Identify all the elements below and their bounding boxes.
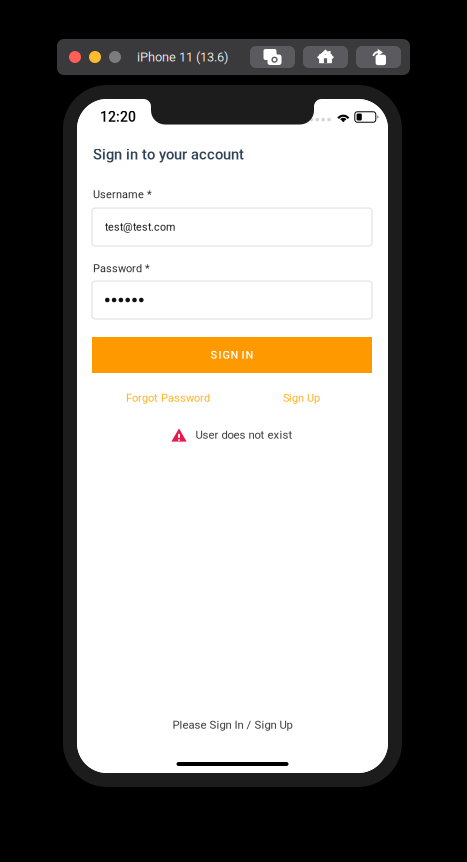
button[interactable]: Minimise	[89, 51, 101, 63]
button[interactable]: Sign Up	[283, 392, 320, 404]
staticText: Password *	[93, 262, 150, 275]
staticText: Please Sign In / Sign Up	[172, 718, 292, 732]
button[interactable]: Close	[69, 51, 81, 63]
button[interactable]: Rotate	[356, 46, 401, 68]
staticText: Sign Up	[283, 392, 320, 404]
staticText: 12:20	[100, 109, 136, 125]
staticText: User does not exist	[196, 428, 293, 442]
button[interactable]: Forgot Password	[126, 392, 210, 404]
button[interactable]: Home	[303, 46, 348, 68]
button[interactable]: S I G N I N	[92, 337, 372, 373]
staticText: S I G N I N	[210, 349, 253, 361]
staticText: Sign in to your account	[93, 146, 244, 163]
staticText: Username *	[93, 188, 152, 201]
button[interactable]: Screenshot	[250, 46, 295, 68]
staticText: iPhone 11 (13.6)	[137, 49, 228, 64]
button[interactable]: Zoom	[109, 51, 121, 63]
staticText: test@test.com	[105, 221, 175, 233]
staticText: Forgot Password	[126, 392, 210, 404]
